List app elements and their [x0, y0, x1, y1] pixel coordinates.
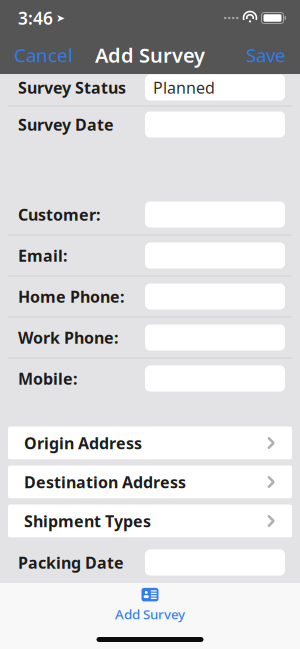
staticText: Add Survey: [115, 605, 185, 623]
staticText: Save: [246, 43, 286, 67]
button[interactable]: Save: [232, 36, 300, 74]
button[interactable]: Shipment Types: [8, 504, 292, 537]
staticText: Survey Status: [18, 77, 126, 98]
button[interactable]: Destination Address: [8, 465, 292, 498]
staticText: Packing Date: [18, 552, 124, 573]
staticText: Home Phone:: [18, 286, 124, 307]
staticText: Email:: [18, 245, 67, 266]
staticText: Customer:: [18, 204, 100, 225]
staticText: Planned: [153, 77, 215, 98]
staticText: Cancel: [14, 43, 73, 67]
button[interactable]: Cancel: [0, 36, 87, 74]
staticText: Origin Address: [24, 432, 142, 454]
staticText: Mobile:: [18, 368, 77, 389]
staticText: Add Survey: [95, 42, 205, 68]
button[interactable]: Origin Address: [8, 426, 292, 459]
staticText: Shipment Types: [24, 510, 151, 532]
staticText: Work Phone:: [18, 327, 118, 348]
staticText: Destination Address: [24, 471, 186, 493]
staticText: ➤: [56, 12, 65, 24]
button[interactable]: Add Survey: [90, 583, 210, 627]
staticText: Survey Date: [18, 114, 114, 135]
staticText: 3:46: [18, 6, 53, 29]
